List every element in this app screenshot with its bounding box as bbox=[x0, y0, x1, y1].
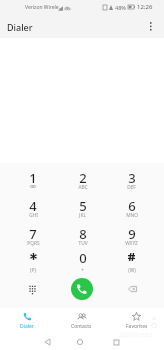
button[interactable]: Dialer bbox=[0, 308, 54, 334]
button[interactable]: Recents bbox=[106, 334, 126, 350]
button[interactable]: 4 bbox=[8, 191, 58, 218]
staticText: TUV bbox=[78, 240, 88, 247]
staticText: JKL bbox=[79, 212, 86, 219]
button[interactable]: Call bbox=[71, 278, 93, 300]
button[interactable]: (W) bbox=[107, 243, 156, 270]
button[interactable]: 8 bbox=[58, 219, 107, 246]
staticText: 4 bbox=[29, 197, 37, 215]
staticText: WXYZ bbox=[125, 240, 138, 247]
button[interactable]: Contacts bbox=[54, 308, 109, 334]
staticText: 5 bbox=[79, 197, 87, 215]
button[interactable]: Keypad bbox=[20, 277, 44, 301]
staticText: (P) bbox=[30, 267, 36, 274]
staticText: 48% bbox=[115, 4, 126, 11]
button[interactable]: 0 bbox=[58, 243, 107, 270]
button[interactable]: 7 bbox=[8, 219, 58, 246]
staticText: 6 bbox=[128, 197, 136, 215]
button[interactable]: 1 bbox=[8, 163, 58, 190]
staticText: 9 bbox=[128, 225, 136, 243]
button[interactable]: 2 bbox=[58, 163, 107, 190]
button[interactable]: 3 bbox=[107, 163, 156, 190]
staticText: Contacts bbox=[71, 323, 92, 330]
staticText: 2 bbox=[79, 169, 87, 187]
staticText: (W) bbox=[128, 267, 136, 274]
button[interactable]: More options bbox=[141, 16, 161, 36]
staticText: 3 bbox=[128, 169, 136, 187]
staticText: 0 bbox=[79, 249, 87, 267]
staticText: Verizon Wirele... bbox=[25, 4, 63, 11]
staticText: ABC bbox=[78, 184, 88, 191]
staticText: Dialer bbox=[20, 323, 34, 330]
staticText: GSMArena bbox=[120, 330, 153, 339]
staticText: 1 bbox=[29, 169, 37, 187]
button[interactable]: Backspace bbox=[120, 277, 144, 301]
button[interactable]: 5 bbox=[58, 191, 107, 218]
staticText: + bbox=[81, 267, 84, 274]
staticText: DEF bbox=[127, 184, 136, 191]
button[interactable]: (P) bbox=[8, 243, 58, 270]
button[interactable]: 6 bbox=[107, 191, 156, 218]
button[interactable]: 9 bbox=[107, 219, 156, 246]
staticText: 7 bbox=[29, 225, 37, 243]
button[interactable]: Home bbox=[70, 334, 90, 350]
button[interactable]: Back bbox=[37, 334, 57, 350]
staticText: 8 bbox=[79, 225, 87, 243]
staticText: PQRS bbox=[27, 240, 40, 247]
button[interactable]: Favorites bbox=[109, 308, 164, 334]
staticText: 12:26 bbox=[137, 3, 153, 11]
staticText: Favorites bbox=[126, 323, 148, 330]
staticText: Dialer bbox=[7, 21, 33, 33]
staticText: MNO bbox=[126, 212, 138, 219]
staticText: GHI bbox=[29, 212, 38, 219]
